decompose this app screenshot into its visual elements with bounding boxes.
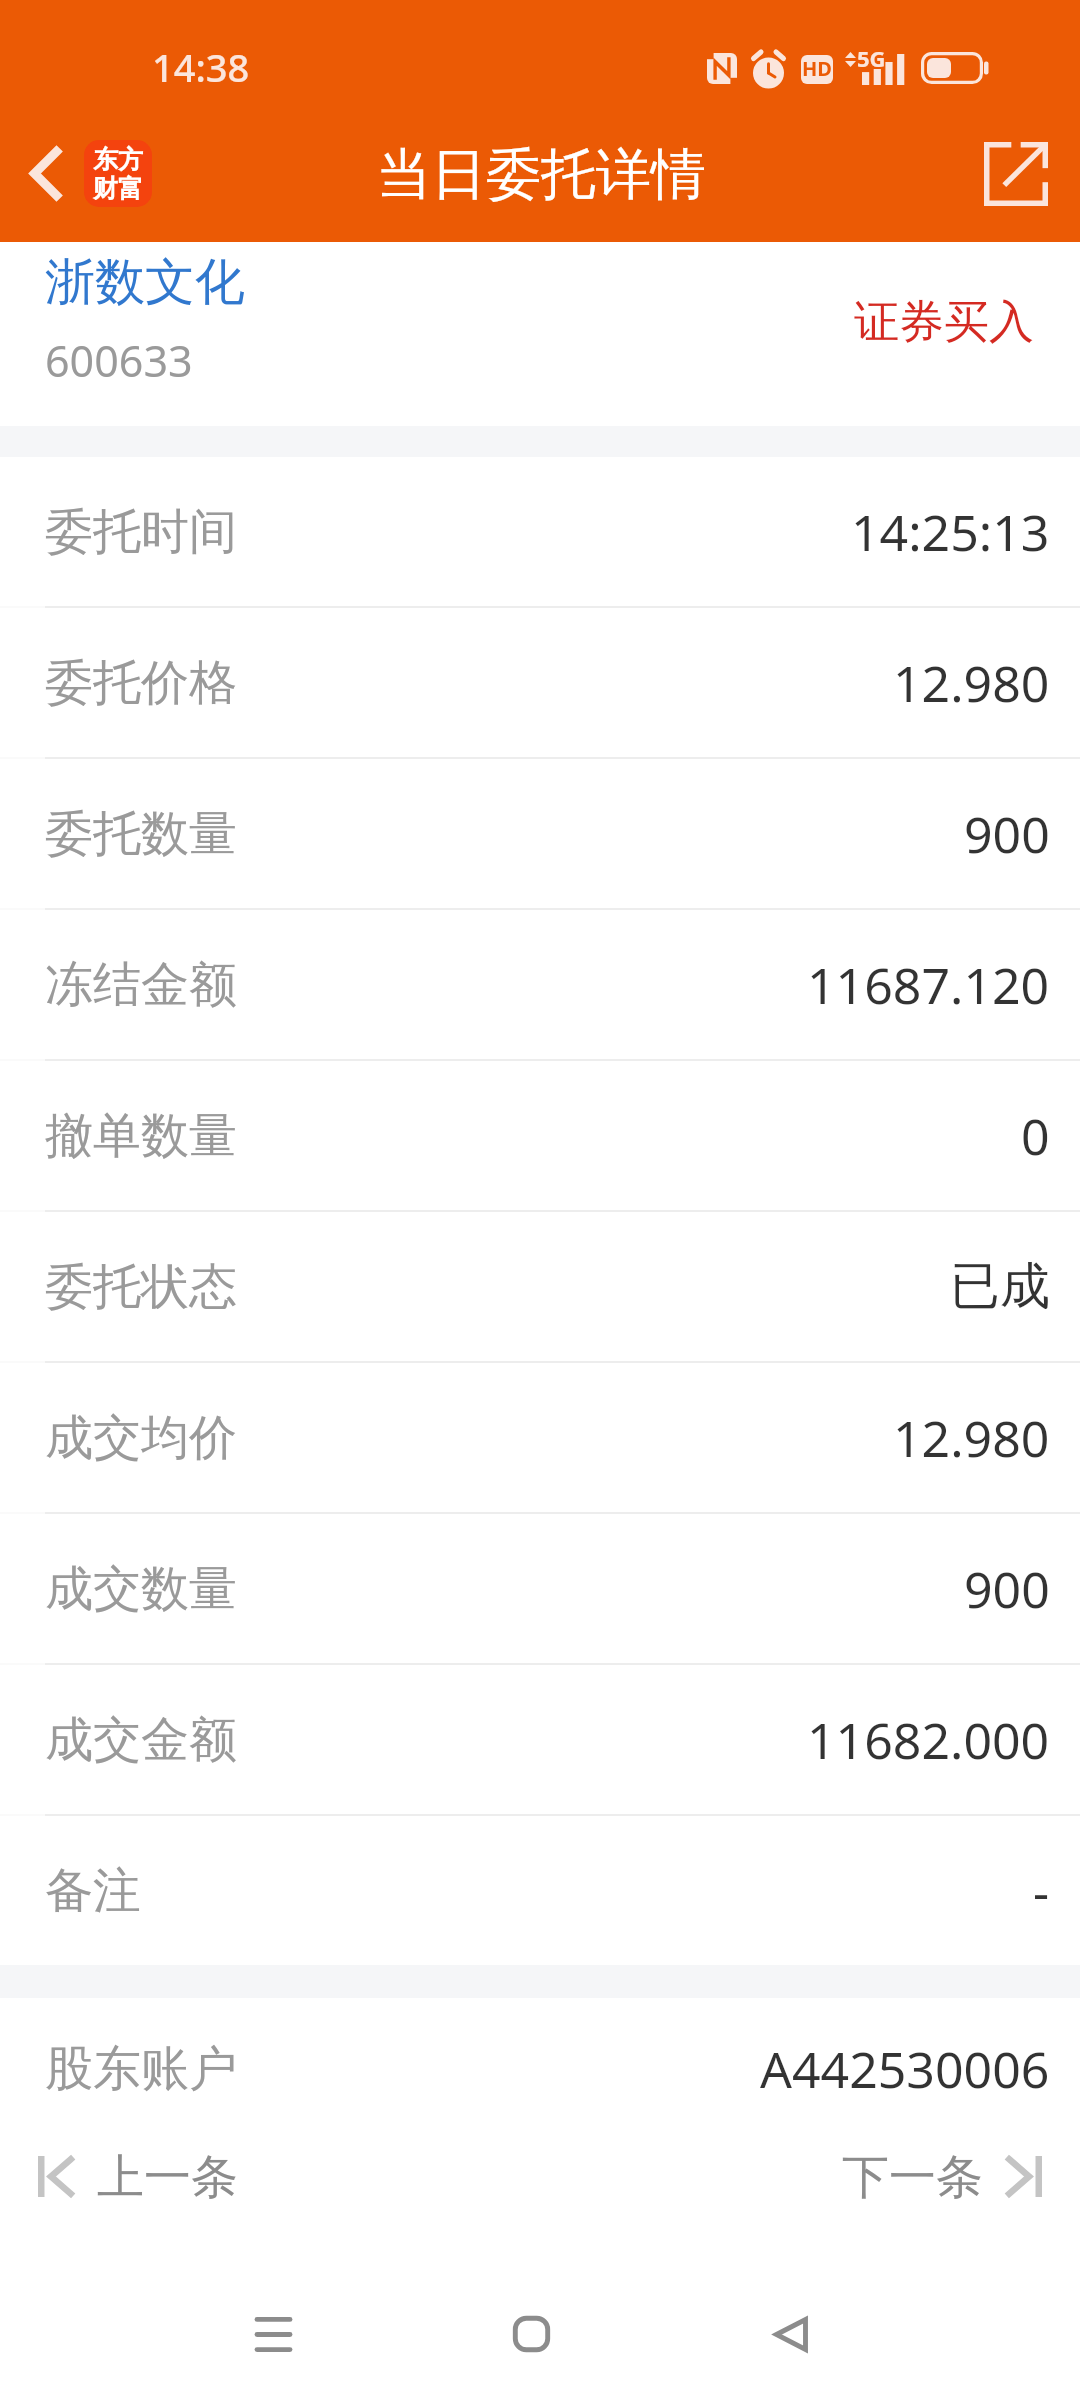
button[interactable]: Back	[0, 126, 88, 236]
staticText: 浙数文化	[45, 251, 245, 314]
staticText: 东方 财富	[93, 144, 143, 204]
button[interactable]: 委托价格	[0, 608, 1080, 757]
button[interactable]: East Money	[84, 140, 152, 207]
staticText: 成交金额	[45, 1710, 237, 1770]
staticText: 备注	[45, 1861, 141, 1921]
staticText: 900	[964, 800, 1050, 868]
staticText: 成交均价	[45, 1408, 237, 1468]
staticText: 12.980	[893, 1404, 1050, 1472]
button[interactable]: 委托状态	[0, 1212, 1080, 1361]
staticText: 证券买入	[854, 294, 1034, 351]
staticText: 下一条	[842, 2148, 983, 2204]
staticText: 已成	[950, 1255, 1050, 1318]
staticText: 0	[1021, 1102, 1050, 1170]
staticText: 委托状态	[45, 1257, 237, 1317]
button[interactable]: Share	[954, 120, 1076, 242]
button[interactable]: Recents	[218, 2279, 328, 2389]
button[interactable]: 上一条	[38, 2148, 238, 2204]
staticText: 委托数量	[45, 804, 237, 864]
button[interactable]: 冻结金额	[0, 910, 1080, 1059]
staticText: 成交数量	[45, 1559, 237, 1619]
button[interactable]: 撤单数量	[0, 1061, 1080, 1210]
staticText: 撤单数量	[45, 1106, 237, 1166]
staticText: 14:25:13	[851, 498, 1050, 566]
staticText: 冻结金额	[45, 955, 237, 1015]
button[interactable]: 备注	[0, 1816, 1080, 1965]
button[interactable]: 委托数量	[0, 759, 1080, 908]
staticText: A442530006	[760, 2035, 1050, 2103]
staticText: 委托价格	[45, 653, 237, 713]
button[interactable]: 成交均价	[0, 1363, 1080, 1512]
button[interactable]: 委托时间	[0, 457, 1080, 606]
button[interactable]: 成交数量	[0, 1514, 1080, 1663]
staticText: 委托时间	[45, 502, 237, 562]
staticText: 上一条	[97, 2148, 238, 2204]
button[interactable]: 成交金额	[0, 1665, 1080, 1814]
staticText: 5G	[857, 43, 886, 73]
staticText: HD	[802, 55, 832, 82]
staticText: 股东账户	[45, 2039, 237, 2099]
staticText: 600633	[45, 331, 193, 390]
staticText: 900	[964, 1555, 1050, 1623]
staticText: 当日委托详情	[376, 140, 706, 209]
staticText: 12.980	[893, 649, 1050, 717]
button[interactable]: 下一条	[842, 2148, 1042, 2204]
button[interactable]: 股东账户	[0, 1998, 1080, 2140]
staticText: 11687.120	[807, 951, 1050, 1019]
staticText: 14:38	[152, 41, 250, 93]
staticText: -	[1033, 1857, 1050, 1925]
button[interactable]: Home	[476, 2279, 586, 2389]
button[interactable]: Back	[736, 2279, 846, 2389]
staticText: 11682.000	[807, 1706, 1050, 1774]
